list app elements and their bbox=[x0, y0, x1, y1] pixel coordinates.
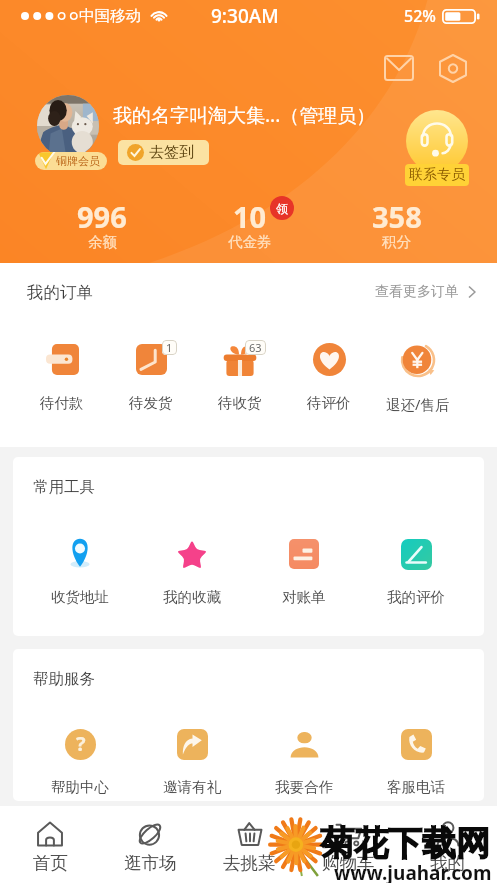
button[interactable]: 待评价 bbox=[284, 341, 373, 412]
button[interactable]: 购物车 bbox=[299, 806, 398, 874]
staticText: 积分 bbox=[382, 233, 411, 251]
button[interactable]: 退还/售后 bbox=[373, 341, 462, 414]
staticText: 待收货 bbox=[218, 394, 262, 412]
staticText: 帮助服务 bbox=[33, 669, 95, 689]
button[interactable]: 收货地址 bbox=[23, 537, 136, 606]
button[interactable]: 63 bbox=[195, 341, 284, 412]
button[interactable]: 10 bbox=[176, 197, 323, 254]
staticText: 我的评价 bbox=[387, 588, 445, 606]
staticText: 待付款 bbox=[40, 394, 84, 412]
staticText: 余额 bbox=[88, 233, 117, 251]
staticText: 去挑菜 bbox=[223, 852, 276, 874]
staticText: 帮助中心 bbox=[51, 778, 109, 796]
staticText: 我的收藏 bbox=[163, 588, 221, 606]
staticText: 待评价 bbox=[307, 394, 351, 412]
staticText: 领 bbox=[276, 201, 288, 216]
staticText: 收货地址 bbox=[51, 588, 109, 606]
staticText: 中国移动 bbox=[79, 6, 141, 26]
button[interactable]: 逛市场 bbox=[100, 806, 200, 874]
staticText: 10 bbox=[233, 197, 267, 236]
button[interactable]: ? bbox=[23, 727, 136, 796]
button[interactable]: 我的收藏 bbox=[136, 537, 248, 606]
staticText: 代金券 bbox=[228, 233, 272, 251]
staticText: 63 bbox=[249, 340, 262, 355]
staticText: ? bbox=[76, 730, 86, 757]
staticText: www.juahar.com bbox=[334, 860, 492, 883]
staticText: 查看更多订单 bbox=[375, 283, 459, 301]
button[interactable]: 联系专员 bbox=[406, 110, 468, 172]
staticText: 996 bbox=[77, 197, 127, 236]
button[interactable]: 待付款 bbox=[17, 341, 106, 412]
staticText: 1 bbox=[166, 340, 173, 355]
staticText: 9:30AM bbox=[211, 3, 279, 29]
staticText: 待发货 bbox=[129, 394, 173, 412]
staticText: 我的 bbox=[430, 852, 465, 874]
button[interactable]: Settings bbox=[431, 46, 475, 90]
staticText: 我要合作 bbox=[275, 778, 333, 796]
staticText: 逛市场 bbox=[124, 852, 177, 874]
staticText: 联系专员 bbox=[409, 166, 465, 184]
button[interactable]: 我的 bbox=[398, 806, 497, 874]
staticText: 常用工具 bbox=[33, 477, 95, 497]
staticText: 358 bbox=[372, 197, 422, 236]
button[interactable]: 996 bbox=[28, 197, 176, 254]
staticText: 铜牌会员 bbox=[56, 154, 100, 168]
button[interactable]: 358 bbox=[323, 197, 470, 254]
button[interactable]: 我的评价 bbox=[360, 537, 472, 606]
staticText: 首页 bbox=[33, 852, 68, 874]
staticText: 我的名字叫淘大集...（管理员） bbox=[113, 102, 376, 128]
staticText: 我的订单 bbox=[27, 282, 93, 303]
button[interactable]: Messages bbox=[377, 46, 421, 90]
staticText: 客服电话 bbox=[387, 778, 445, 796]
button[interactable]: 对账单 bbox=[248, 537, 360, 606]
button[interactable]: 去签到 bbox=[118, 140, 209, 165]
button[interactable]: 1 bbox=[106, 341, 195, 412]
button[interactable]: Avatar bbox=[37, 95, 99, 157]
staticText: 对账单 bbox=[282, 588, 326, 606]
button[interactable]: 邀请有礼 bbox=[136, 727, 248, 796]
button[interactable]: 首页 bbox=[0, 806, 100, 874]
staticText: 邀请有礼 bbox=[163, 778, 221, 796]
staticText: 退还/售后 bbox=[386, 394, 450, 414]
staticText: 去签到 bbox=[149, 143, 194, 162]
button[interactable]: 我要合作 bbox=[248, 727, 360, 796]
button[interactable]: 客服电话 bbox=[360, 727, 472, 796]
button[interactable]: 去挑菜 bbox=[200, 806, 299, 874]
staticText: 购物车 bbox=[322, 852, 375, 874]
button[interactable]: 联系专员 bbox=[405, 164, 469, 186]
staticText: 菊花下载网 bbox=[320, 822, 490, 865]
staticText: 52% bbox=[404, 5, 436, 27]
button[interactable]: 查看更多订单 bbox=[375, 283, 476, 301]
